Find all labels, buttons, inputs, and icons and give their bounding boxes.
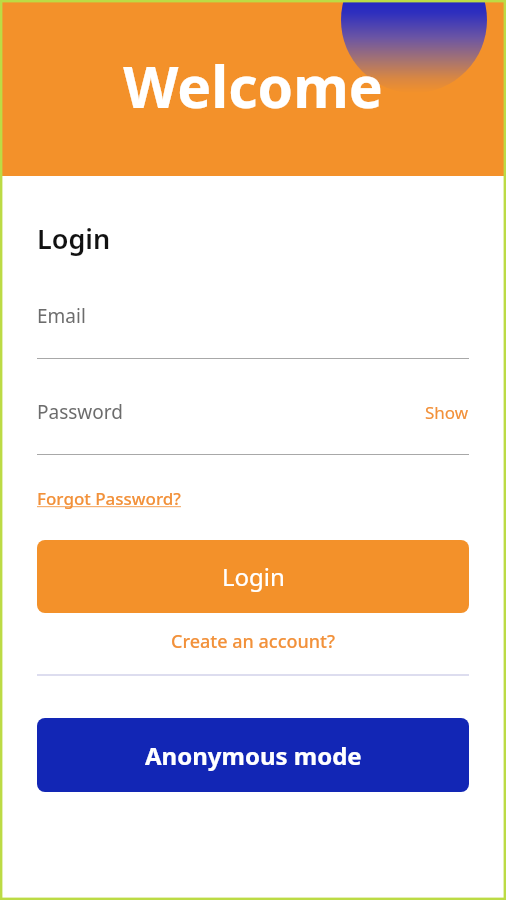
button[interactable]: Forgot Password? [37, 487, 181, 510]
staticText: Email [37, 303, 86, 329]
button[interactable]: Create an account? [37, 629, 469, 654]
staticText: Login [222, 560, 285, 593]
button[interactable]: Anonymous mode [37, 718, 469, 792]
staticText: Login [37, 220, 111, 257]
staticText: Anonymous mode [145, 739, 362, 772]
staticText: Welcome [123, 47, 383, 125]
button[interactable]: Email [37, 303, 469, 359]
staticText: Forgot Password? [37, 487, 181, 510]
button[interactable]: Show [425, 401, 469, 424]
staticText: Create an account? [171, 629, 335, 654]
button[interactable]: Password [37, 399, 123, 425]
staticText: Show [425, 401, 469, 424]
button[interactable]: Login [37, 540, 469, 613]
